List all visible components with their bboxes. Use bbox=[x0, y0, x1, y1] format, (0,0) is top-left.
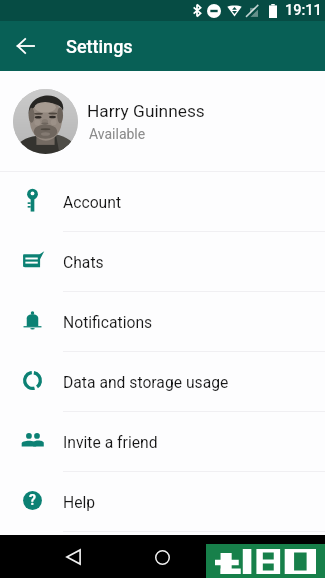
button[interactable]: Back bbox=[5, 26, 45, 66]
button[interactable]: Back bbox=[58, 542, 88, 572]
button[interactable]: Data and storage usage bbox=[0, 352, 325, 411]
staticText: Data and storage usage bbox=[63, 373, 229, 391]
button[interactable]: Invite a friend bbox=[0, 412, 325, 471]
staticText: ? bbox=[29, 492, 36, 508]
staticText: Invite a friend bbox=[63, 433, 158, 451]
staticText: Notifications bbox=[63, 313, 153, 331]
button[interactable]: Harry Guinness bbox=[0, 71, 325, 171]
staticText: Help bbox=[63, 493, 96, 511]
staticText: 19:11 bbox=[285, 2, 322, 19]
staticText: Available bbox=[89, 126, 146, 142]
button[interactable]: ? bbox=[0, 472, 325, 531]
staticText: Account bbox=[63, 193, 122, 211]
staticText: Settings bbox=[66, 36, 133, 57]
button[interactable]: Chats bbox=[0, 232, 325, 291]
staticText: Harry Guinness bbox=[87, 101, 205, 121]
button[interactable]: Notifications bbox=[0, 292, 325, 351]
staticText: Chats bbox=[63, 253, 104, 271]
button[interactable]: Account bbox=[0, 172, 325, 231]
button[interactable]: Home bbox=[147, 542, 177, 572]
